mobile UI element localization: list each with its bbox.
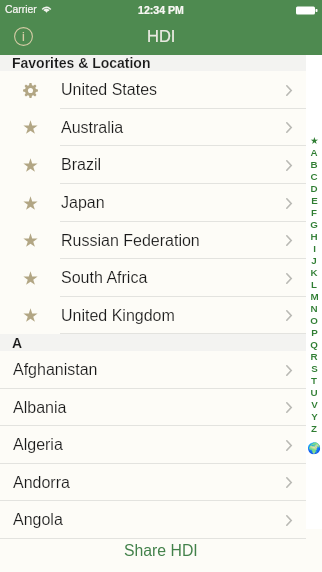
button[interactable]: Albania <box>0 389 322 426</box>
button[interactable]: Share HDI <box>114 538 208 564</box>
staticText: Albania <box>13 399 67 417</box>
staticText: A <box>310 147 318 158</box>
button[interactable]: Russian Federation <box>0 222 322 259</box>
button[interactable]: Australia <box>0 109 322 146</box>
staticText: P <box>311 327 318 338</box>
staticText: L <box>311 279 317 290</box>
staticText: U <box>310 387 318 398</box>
staticText: United States <box>61 81 158 99</box>
button[interactable]: South Africa <box>0 259 322 297</box>
staticText: D <box>310 183 318 194</box>
staticText: ★ <box>310 135 319 146</box>
staticText: Brazil <box>61 156 102 174</box>
staticText: H <box>310 231 318 242</box>
button[interactable]: Andorra <box>0 464 322 501</box>
staticText: Q <box>310 339 318 350</box>
staticText: Z <box>311 423 317 434</box>
staticText: F <box>311 207 317 218</box>
staticText: Japan <box>61 194 105 212</box>
staticText: Share HDI <box>124 542 198 560</box>
staticText: Favorites & Location <box>12 55 151 71</box>
button[interactable]: Angola <box>0 501 322 539</box>
button[interactable]: United States <box>0 71 322 109</box>
staticText: Carrier <box>5 4 37 16</box>
button[interactable]: Japan <box>0 184 322 222</box>
staticText: N <box>310 303 318 314</box>
staticText: HDI <box>147 27 176 45</box>
staticText: B <box>310 159 318 170</box>
staticText: C <box>310 171 318 182</box>
staticText: Andorra <box>13 474 70 492</box>
staticText: Angola <box>13 511 63 529</box>
staticText: J <box>311 255 317 266</box>
staticText: K <box>310 267 318 278</box>
button[interactable]: United Kingdom <box>0 297 322 334</box>
staticText: A <box>12 335 23 351</box>
button[interactable]: Algeria <box>0 426 322 464</box>
staticText: O <box>310 315 318 326</box>
staticText: V <box>311 399 318 410</box>
staticText: South Africa <box>61 269 148 287</box>
staticText: United Kingdom <box>61 307 175 325</box>
button[interactable]: Brazil <box>0 146 322 184</box>
staticText: M <box>310 291 319 302</box>
staticText: I <box>313 243 316 254</box>
button[interactable]: Info <box>8 21 38 51</box>
button[interactable]: Afghanistan <box>0 351 322 389</box>
staticText: 🌍 <box>307 442 321 455</box>
staticText: T <box>311 375 317 386</box>
staticText: Russian Federation <box>61 232 200 250</box>
staticText: Algeria <box>13 436 63 454</box>
staticText: S <box>311 363 318 374</box>
staticText: Australia <box>61 119 124 137</box>
staticText: G <box>310 219 318 230</box>
staticText: i <box>22 29 25 44</box>
staticText: 12:34 PM <box>138 4 184 16</box>
button[interactable]: Index <box>306 134 322 455</box>
staticText: R <box>310 351 318 362</box>
staticText: E <box>311 195 318 206</box>
staticText: Y <box>311 411 318 422</box>
staticText: Afghanistan <box>13 361 98 379</box>
